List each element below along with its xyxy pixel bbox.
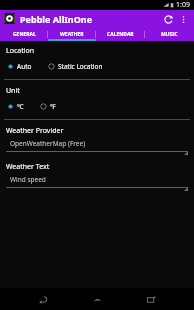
staticText: Location: [6, 46, 35, 56]
button[interactable]: GENERAL: [0, 27, 48, 41]
button[interactable]: CALENDAR: [96, 27, 145, 41]
button[interactable]: Wind speed: [6, 175, 188, 191]
button[interactable]: Recent apps: [140, 288, 162, 310]
button[interactable]: More options: [176, 12, 190, 26]
staticText: 1:09: [176, 0, 190, 10]
button[interactable]: Refresh: [160, 11, 176, 27]
staticText: GENERAL: [13, 31, 36, 38]
staticText: WEATHER: [60, 31, 84, 38]
button[interactable]: WEATHER: [48, 27, 96, 41]
button[interactable]: Back: [32, 288, 54, 310]
staticText: ℉: [50, 102, 56, 111]
staticText: Unit: [6, 86, 20, 96]
staticText: Pebble AllInOne: [20, 13, 93, 25]
button[interactable]: Auto: [7, 61, 32, 72]
staticText: ℃: [17, 102, 24, 111]
button[interactable]: Home: [86, 288, 108, 310]
button[interactable]: ℃: [7, 101, 24, 112]
staticText: Static Location: [58, 62, 103, 71]
staticText: CALENDAR: [107, 31, 134, 38]
staticText: MUSIC: [161, 31, 178, 38]
staticText: Wind speed: [10, 175, 46, 184]
button[interactable]: ℉: [40, 101, 56, 112]
staticText: Weather Text: [6, 162, 50, 172]
button[interactable]: OpenWeatherMap (Free): [6, 139, 188, 155]
button[interactable]: Static Location: [48, 61, 103, 72]
button[interactable]: MUSIC: [145, 27, 194, 41]
staticText: Auto: [17, 62, 32, 71]
staticText: Weather Provider: [6, 126, 64, 136]
staticText: OpenWeatherMap (Free): [10, 139, 86, 148]
